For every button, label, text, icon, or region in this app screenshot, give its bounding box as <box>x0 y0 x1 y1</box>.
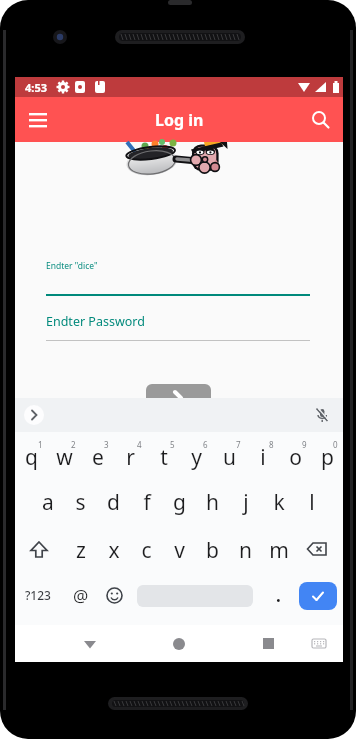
button[interactable] <box>301 531 333 569</box>
button[interactable]: u <box>213 438 246 476</box>
staticText: h <box>206 488 219 517</box>
button[interactable]: i <box>246 438 279 476</box>
button[interactable]: m <box>262 531 295 569</box>
button[interactable]: h <box>196 483 229 521</box>
button[interactable]: j <box>229 483 262 521</box>
staticText: j <box>243 488 249 517</box>
button[interactable] <box>23 531 55 569</box>
button[interactable]: k <box>262 483 295 521</box>
staticText: 7 <box>236 439 241 450</box>
button[interactable]: b <box>196 531 229 569</box>
staticText: ?123 <box>25 587 51 603</box>
button[interactable] <box>23 105 53 135</box>
staticText: 4 <box>137 439 142 450</box>
button[interactable] <box>307 632 331 656</box>
button[interactable] <box>238 625 298 662</box>
staticText: Log in <box>155 109 204 131</box>
staticText: w <box>56 443 73 472</box>
staticText: f <box>143 488 151 517</box>
staticText: 0 <box>333 439 338 450</box>
button[interactable]: s <box>64 483 97 521</box>
button[interactable] <box>60 625 120 662</box>
button[interactable] <box>23 404 45 426</box>
staticText: r <box>126 443 135 472</box>
button[interactable]: p <box>312 438 343 476</box>
staticText: 5 <box>170 439 175 450</box>
button[interactable]: d <box>97 483 130 521</box>
staticText: 8 <box>269 439 274 450</box>
button[interactable]: o <box>279 438 312 476</box>
staticText: p <box>321 443 334 472</box>
staticText: z <box>76 536 86 565</box>
button[interactable]: c <box>130 531 163 569</box>
button[interactable]: y <box>180 438 213 476</box>
staticText: t <box>160 443 168 472</box>
staticText: c <box>141 536 152 565</box>
button[interactable]: . <box>263 576 293 614</box>
button[interactable]: r <box>114 438 147 476</box>
staticText: @ <box>73 584 89 607</box>
staticText: 2 <box>71 439 76 450</box>
staticText: g <box>173 488 186 517</box>
staticText: e <box>92 443 104 472</box>
staticText: d <box>107 488 120 517</box>
staticText: 9 <box>302 439 307 450</box>
staticText: n <box>239 536 252 565</box>
staticText: 3 <box>104 439 109 450</box>
button[interactable]: g <box>163 483 196 521</box>
staticText: u <box>223 443 236 472</box>
staticText: k <box>273 488 285 517</box>
button[interactable] <box>299 582 337 610</box>
staticText: y <box>191 443 202 472</box>
staticText: b <box>206 536 219 565</box>
button[interactable] <box>307 106 335 134</box>
staticText: 6 <box>203 439 208 450</box>
staticText: l <box>309 488 315 517</box>
button[interactable] <box>311 404 333 426</box>
staticText: o <box>289 443 302 472</box>
button[interactable]: w <box>48 438 81 476</box>
button[interactable]: v <box>163 531 196 569</box>
staticText: . <box>276 584 281 607</box>
staticText: s <box>75 488 86 517</box>
staticText: Endter "dice" <box>46 260 98 272</box>
staticText: v <box>174 536 185 565</box>
staticText: m <box>269 536 289 565</box>
button[interactable]: n <box>229 531 262 569</box>
button[interactable] <box>98 576 130 614</box>
button[interactable]: ?123 <box>15 576 61 614</box>
button[interactable] <box>146 384 211 398</box>
button[interactable]: z <box>64 531 97 569</box>
staticText: 4:53 <box>25 80 47 95</box>
button[interactable]: x <box>97 531 130 569</box>
staticText: x <box>108 536 120 565</box>
button[interactable]: f <box>130 483 163 521</box>
staticText: 1 <box>38 439 43 450</box>
button[interactable] <box>149 625 209 662</box>
button[interactable]: a <box>31 483 64 521</box>
staticText: a <box>42 488 54 517</box>
button[interactable]: t <box>147 438 180 476</box>
staticText: Endter Password <box>46 313 145 330</box>
staticText: q <box>25 443 38 472</box>
button[interactable]: l <box>295 483 328 521</box>
button[interactable]: @ <box>65 576 97 614</box>
button[interactable]: q <box>15 438 48 476</box>
staticText: i <box>260 443 266 472</box>
button[interactable]: e <box>81 438 114 476</box>
